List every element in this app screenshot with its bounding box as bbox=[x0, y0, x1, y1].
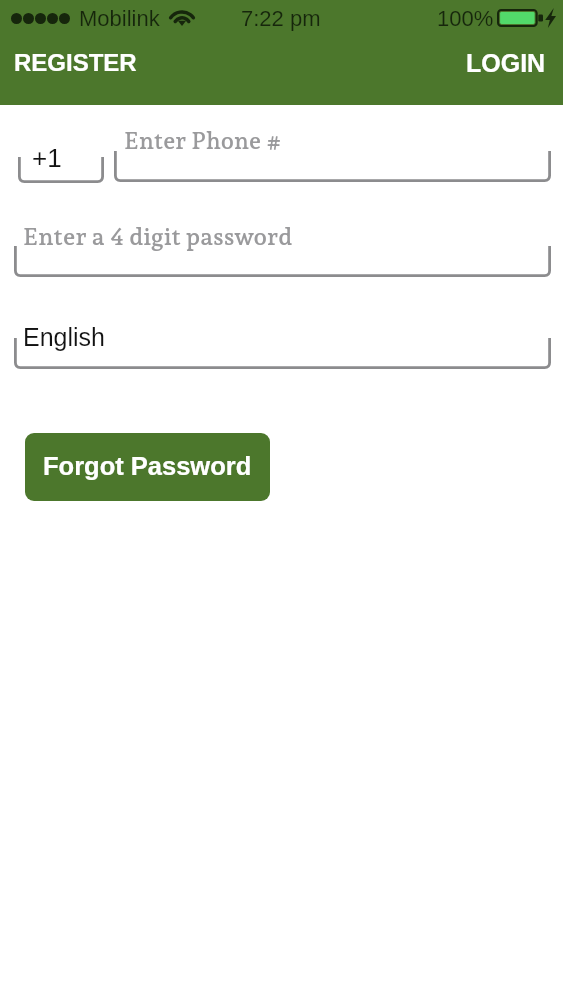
other: Signal strength bbox=[11, 13, 70, 24]
staticText: Mobilink bbox=[79, 6, 160, 31]
staticText: Enter Phone # bbox=[124, 127, 282, 155]
staticText: 7:22 pm bbox=[241, 6, 321, 31]
button[interactable]: +1 bbox=[18, 131, 104, 183]
button[interactable]: Enter a 4 digit password bbox=[14, 220, 551, 277]
button[interactable]: REGISTER bbox=[0, 36, 155, 89]
staticText: LOGIN bbox=[466, 49, 546, 77]
button[interactable]: Enter Phone # bbox=[114, 125, 551, 182]
other: Battery full bbox=[497, 9, 543, 27]
other: Wi-Fi bbox=[170, 8, 194, 26]
staticText: 100% bbox=[437, 6, 494, 31]
other: Charging bbox=[545, 8, 556, 28]
button[interactable]: LOGIN bbox=[448, 36, 563, 90]
staticText: Enter a 4 digit password bbox=[23, 222, 293, 250]
staticText: +1 bbox=[32, 143, 62, 172]
staticText: REGISTER bbox=[14, 49, 137, 76]
staticText: English bbox=[23, 323, 105, 351]
button[interactable]: Forgot Password bbox=[25, 433, 270, 501]
staticText: Forgot Password bbox=[43, 452, 252, 480]
button[interactable]: English bbox=[14, 312, 551, 369]
